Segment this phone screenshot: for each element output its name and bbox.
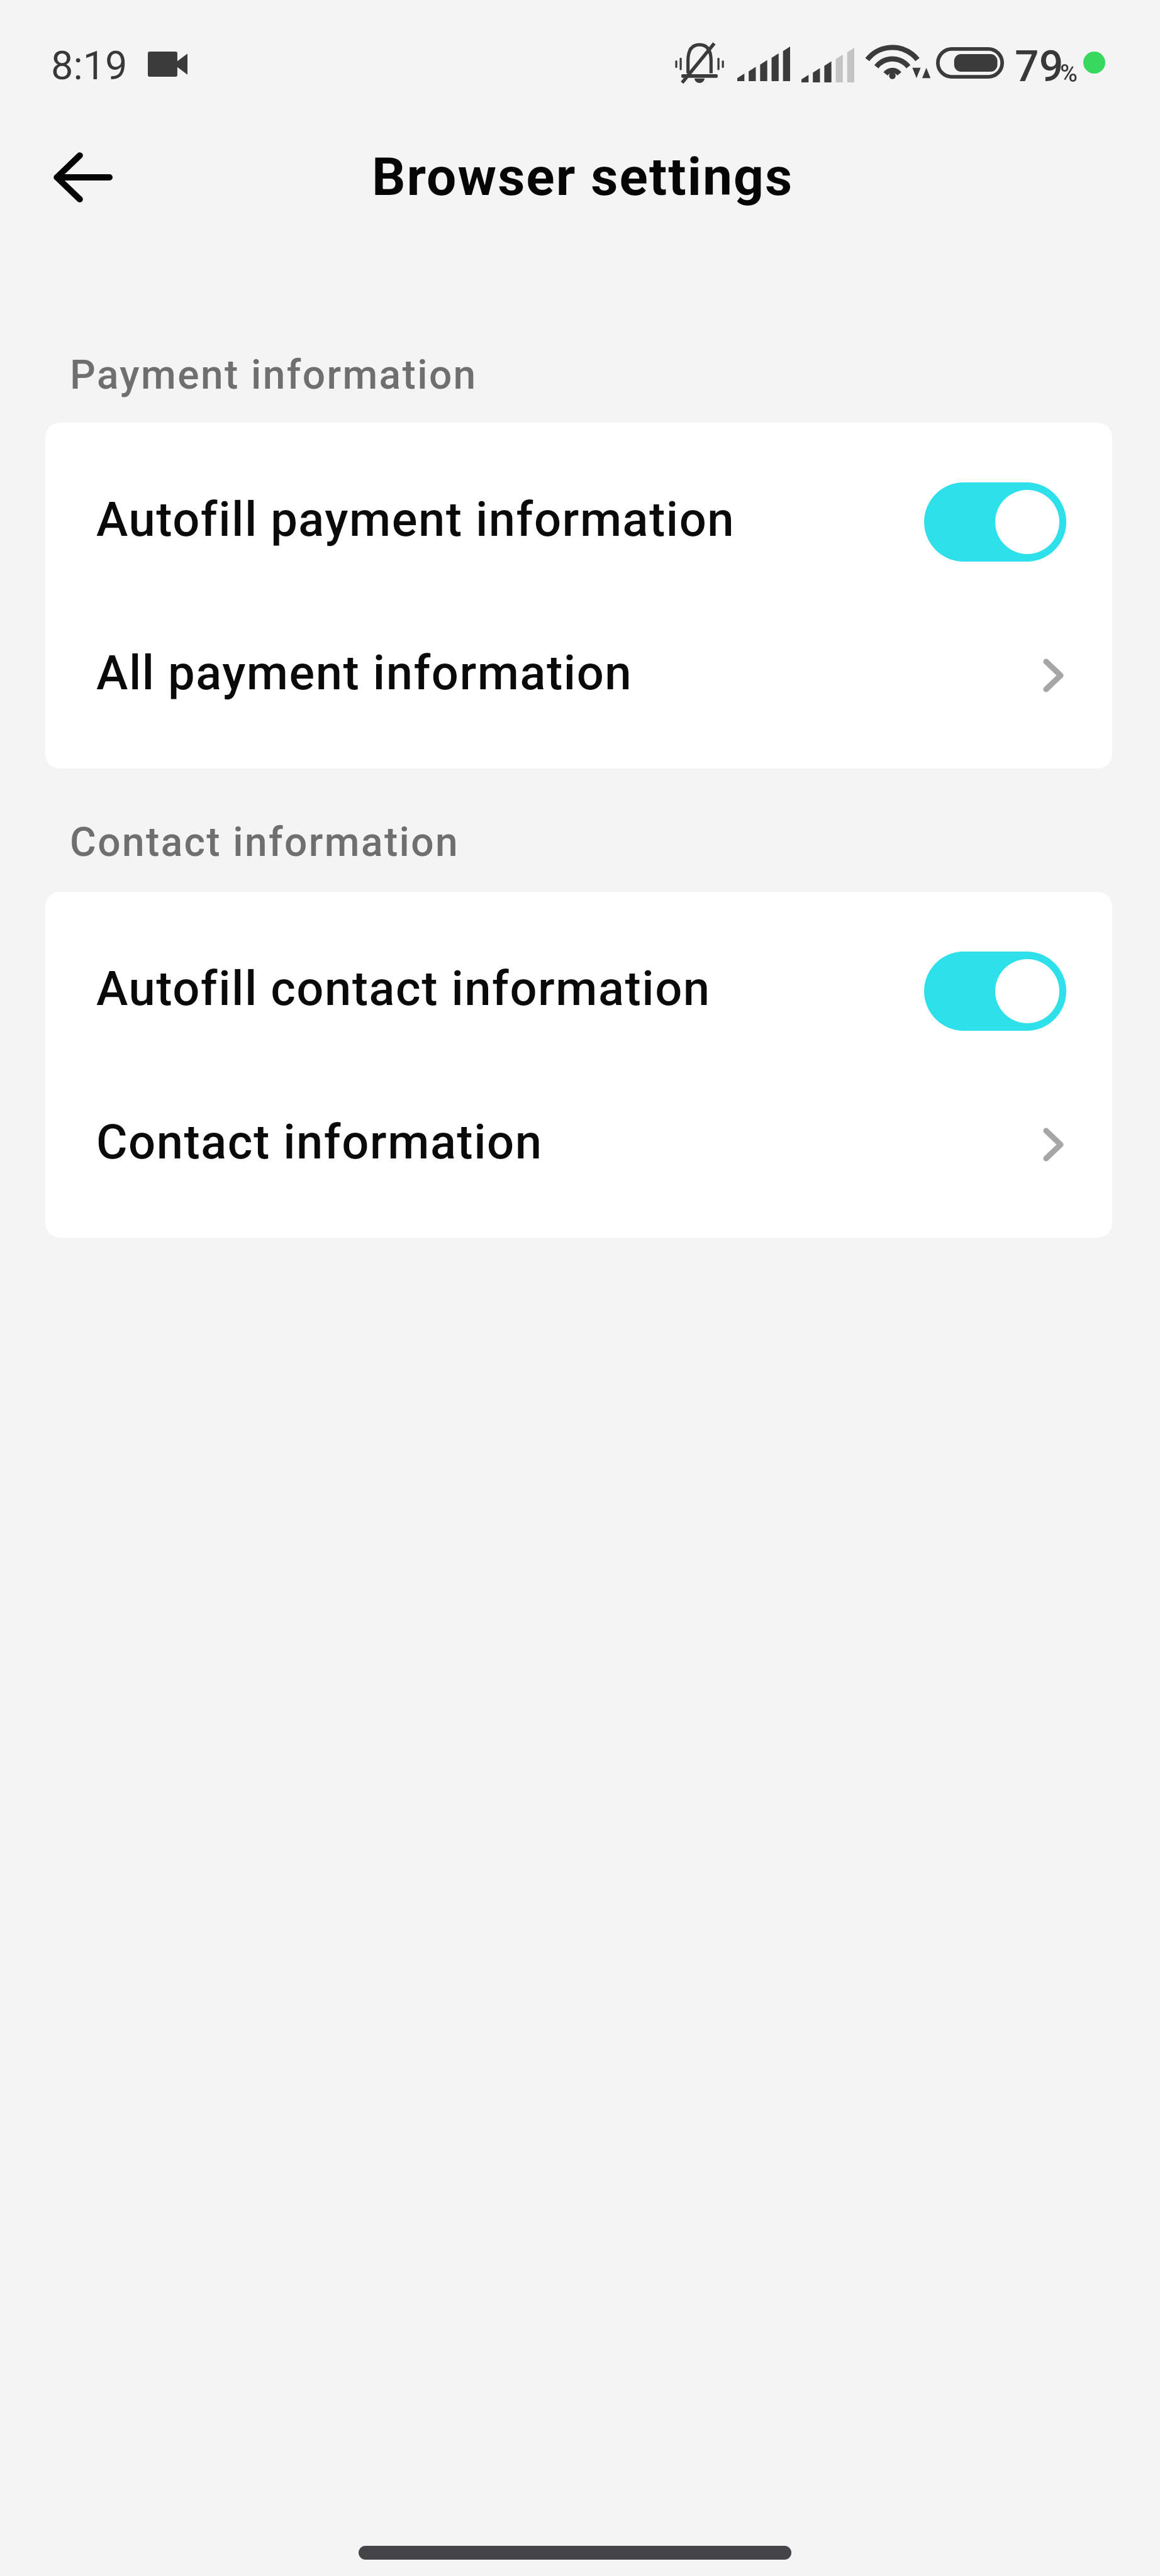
staticText: Payment information [70, 352, 477, 399]
staticText: 8:19 [51, 43, 128, 89]
button[interactable]: Toggle Autofill payment information [924, 482, 1066, 562]
button[interactable]: Back [39, 133, 127, 221]
button[interactable]: All payment information [45, 596, 1112, 749]
staticText: Autofill contact information [96, 960, 711, 1016]
staticText: % [1060, 60, 1078, 88]
button[interactable]: Autofill contact information [45, 911, 1112, 1065]
staticText: All payment information [96, 645, 633, 701]
staticText: 79 [1015, 42, 1064, 92]
staticText: Browser settings [372, 146, 794, 208]
button[interactable]: Toggle Autofill contact information [924, 952, 1066, 1031]
button[interactable]: Contact information [45, 1065, 1112, 1218]
staticText: Contact information [96, 1114, 543, 1170]
staticText: Autofill payment information [96, 491, 735, 547]
staticText: Contact information [70, 819, 460, 866]
button[interactable]: Autofill payment information [45, 442, 1112, 596]
